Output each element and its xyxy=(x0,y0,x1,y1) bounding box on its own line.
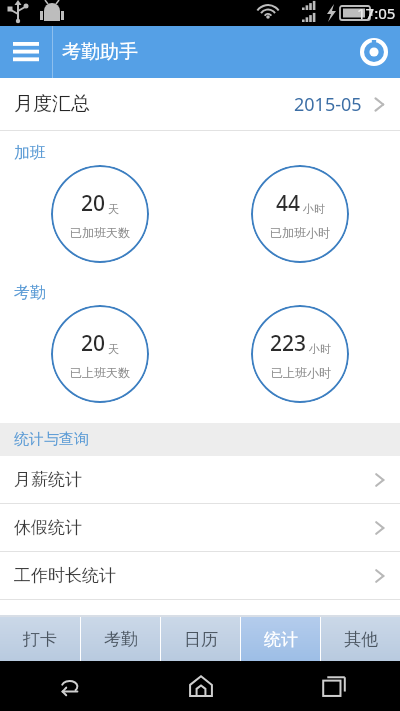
staticText: 223 xyxy=(270,329,307,358)
button[interactable]: 工作时长统计 xyxy=(0,552,400,599)
button[interactable]: 44 xyxy=(251,165,349,263)
button[interactable]: Home xyxy=(134,661,267,711)
staticText: 小时 xyxy=(303,202,325,216)
button[interactable]: 20 xyxy=(51,305,149,403)
staticText: 20 xyxy=(81,189,106,218)
staticText: 统计与查询 xyxy=(14,430,89,449)
staticText: 天 xyxy=(108,202,119,216)
staticText: 已上班小时 xyxy=(271,365,331,380)
button[interactable]: 其他 xyxy=(321,617,400,661)
staticText: 2015-05 xyxy=(294,92,362,117)
button[interactable]: Menu xyxy=(0,26,52,78)
staticText: 月度汇总 xyxy=(14,92,90,116)
staticText: 天 xyxy=(108,342,119,356)
staticText: 考勤 xyxy=(14,283,46,303)
staticText: 工作时长统计 xyxy=(14,565,116,586)
staticText: 44 xyxy=(276,189,301,218)
staticText: 20 xyxy=(81,329,106,358)
button[interactable]: 223 xyxy=(251,305,349,403)
staticText: 已加班天数 xyxy=(70,225,130,240)
button[interactable]: 20 xyxy=(51,165,149,263)
staticText: 已上班天数 xyxy=(70,365,130,380)
staticText: 打卡 xyxy=(23,629,57,650)
staticText: 已加班小时 xyxy=(270,225,330,240)
staticText: 考勤 xyxy=(104,629,138,650)
staticText: 休假统计 xyxy=(14,517,82,538)
button[interactable]: 考勤 xyxy=(81,617,160,661)
staticText: 月薪统计 xyxy=(14,469,82,490)
button[interactable]: Recents xyxy=(267,661,400,711)
button[interactable]: Timer xyxy=(348,26,400,78)
staticText: 小时 xyxy=(309,342,331,356)
button[interactable]: 月度汇总 xyxy=(0,78,400,130)
button[interactable]: 日历 xyxy=(161,617,240,661)
button[interactable]: 休假统计 xyxy=(0,504,400,551)
staticText: 日历 xyxy=(184,629,218,650)
staticText: 17:05 xyxy=(357,3,396,23)
staticText: 其他 xyxy=(344,629,378,650)
button[interactable]: 打卡 xyxy=(0,617,80,661)
staticText: 统计 xyxy=(264,629,298,650)
staticText: 加班 xyxy=(14,143,46,163)
button[interactable]: 月薪统计 xyxy=(0,456,400,503)
button[interactable]: 统计 xyxy=(241,617,320,661)
staticText: 考勤助手 xyxy=(62,40,138,64)
button[interactable]: Back xyxy=(0,661,134,711)
